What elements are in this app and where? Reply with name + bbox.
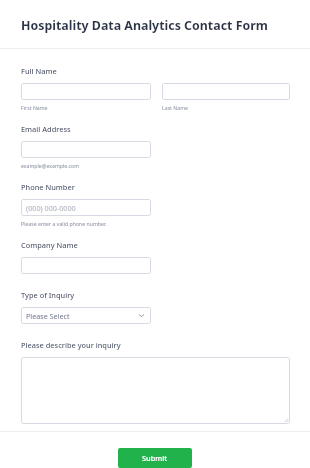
button[interactable]: First Name input	[21, 83, 151, 100]
staticText: Company Name	[21, 240, 78, 250]
staticText: Please describe your inquiry	[21, 340, 121, 350]
staticText: Type of Inquiry	[21, 290, 75, 300]
button[interactable]: Phone Number input	[21, 199, 151, 216]
button[interactable]: Email Address input	[21, 141, 151, 158]
staticText: (000) 000-0000	[26, 203, 76, 213]
button[interactable]: Company Name input	[21, 257, 151, 274]
staticText: Full Name	[21, 66, 57, 76]
button[interactable]: Inquiry description input	[21, 357, 290, 424]
staticText: Please Select	[26, 311, 70, 321]
button[interactable]: Type of Inquiry dropdown	[21, 307, 151, 324]
button[interactable]: Submit	[118, 448, 192, 468]
staticText: Phone Number	[21, 182, 75, 192]
staticText: example@example.com	[21, 162, 80, 169]
staticText: First Name	[21, 104, 48, 111]
staticText: Hospitality Data Analytics Contact Form	[21, 17, 268, 34]
staticText: Submit	[142, 453, 168, 463]
staticText: Email Address	[21, 124, 71, 134]
staticText: Please enter a valid phone number.	[21, 220, 107, 227]
staticText: Last Name	[162, 104, 188, 111]
button[interactable]: Last Name input	[162, 83, 290, 100]
